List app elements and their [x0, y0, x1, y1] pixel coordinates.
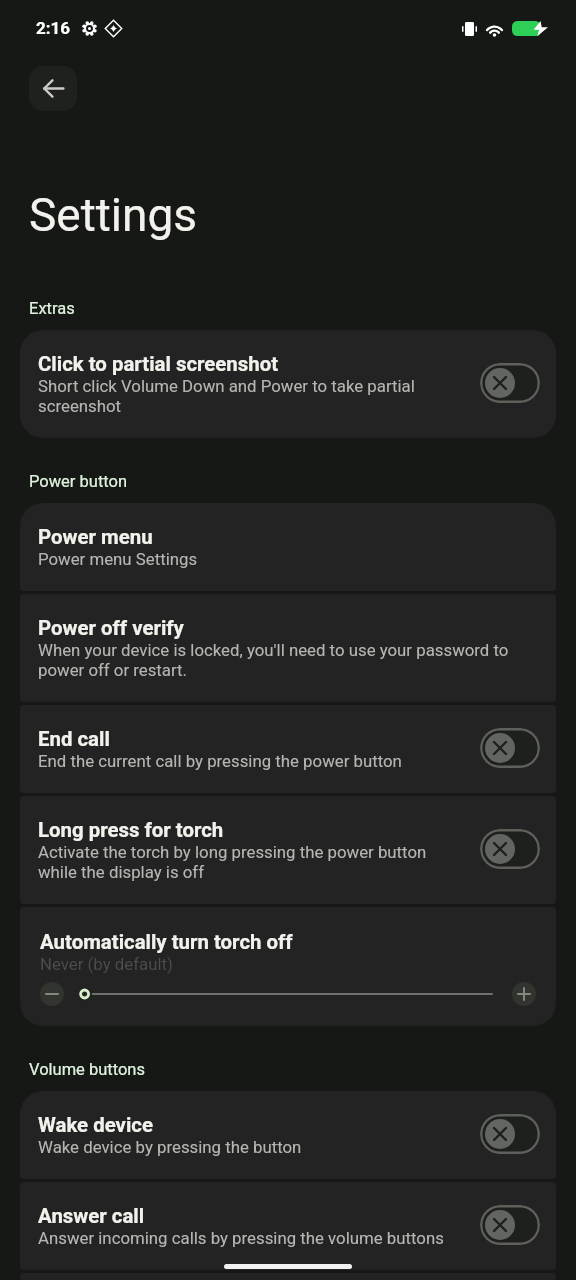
staticText: Extras [29, 299, 75, 318]
staticText: Answer call [38, 1202, 145, 1228]
button[interactable]: Click to partial screenshot [20, 330, 556, 438]
button[interactable]: End call [20, 705, 556, 793]
button[interactable]: Back [29, 66, 77, 111]
staticText: Answer incoming calls by pressing the vo… [38, 1228, 444, 1248]
staticText: Activate the torch by long pressing the … [38, 842, 460, 882]
staticText: Power menu [38, 523, 153, 549]
staticText: Wake device by pressing the button [38, 1137, 302, 1157]
staticText: Power button [29, 472, 128, 491]
staticText: Power off verify [38, 614, 184, 640]
button[interactable]: Toggle setting [480, 829, 540, 869]
button[interactable]: Long press for torch [20, 796, 556, 904]
staticText: Settings [29, 188, 197, 242]
staticText: Never (by default) [40, 954, 173, 974]
staticText: When your device is locked, you'll need … [38, 640, 520, 680]
button[interactable]: Power off verify [20, 594, 556, 702]
button[interactable]: Toggle setting [480, 1205, 540, 1245]
staticText: Wake device [38, 1111, 153, 1137]
staticText: 2:16 [36, 18, 71, 38]
button[interactable]: Toggle setting [480, 1114, 540, 1154]
button[interactable]: Answer call [20, 1182, 556, 1270]
button[interactable]: Toggle setting [480, 728, 540, 768]
staticText: End the current call by pressing the pow… [38, 751, 402, 771]
button[interactable]: Toggle setting [480, 363, 540, 403]
button[interactable]: Increase [512, 982, 536, 1006]
button[interactable]: Power menu [20, 503, 556, 591]
staticText: Volume buttons [29, 1060, 145, 1079]
staticText: Long press for torch [38, 816, 224, 842]
staticText: Power menu Settings [38, 549, 198, 569]
staticText: End call [38, 725, 110, 751]
staticText: Short click Volume Down and Power to tak… [38, 376, 460, 416]
button[interactable]: Wake device [20, 1091, 556, 1179]
staticText: Automatically turn torch off [40, 928, 293, 954]
button[interactable]: Decrease [40, 982, 64, 1006]
staticText: Click to partial screenshot [38, 350, 279, 376]
